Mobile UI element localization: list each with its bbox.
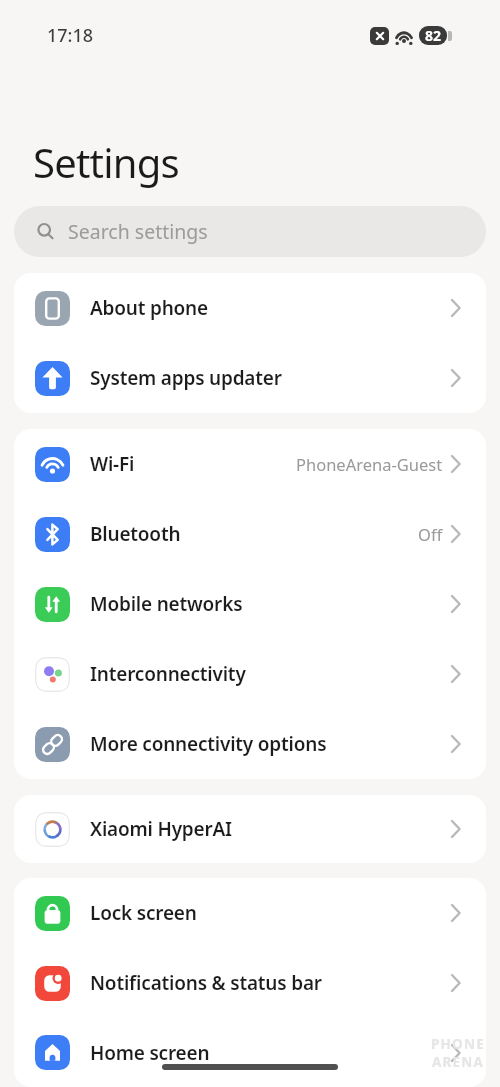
staticText: Lock screen [90, 900, 197, 926]
staticText: Search settings [68, 218, 208, 245]
staticText: Xiaomi HyperAI [90, 816, 232, 842]
staticText: Wi-Fi [90, 451, 135, 477]
button[interactable]: Interconnectivity [14, 639, 486, 709]
button[interactable]: Xiaomi HyperAI [14, 795, 486, 863]
staticText: About phone [90, 295, 208, 321]
staticText: 82 [425, 26, 442, 45]
staticText: Bluetooth [90, 521, 181, 547]
button[interactable]: About phone [14, 273, 486, 343]
staticText: Home screen [90, 1040, 210, 1066]
button[interactable]: More connectivity options [14, 709, 486, 779]
staticText: Interconnectivity [90, 661, 246, 687]
staticText: PhoneArena-Guest [296, 453, 443, 475]
button[interactable]: Search settings [14, 206, 486, 257]
button[interactable]: Mobile networks [14, 569, 486, 639]
button[interactable]: Wi-Fi [14, 429, 486, 499]
staticText: ARENA [432, 1053, 485, 1071]
staticText: Notifications & status bar [90, 970, 322, 996]
button[interactable]: Bluetooth [14, 499, 486, 569]
button[interactable]: Lock screen [14, 878, 486, 948]
staticText: Settings [33, 135, 179, 189]
button[interactable]: Notifications & status bar [14, 948, 486, 1018]
staticText: 17:18 [47, 23, 94, 48]
staticText: More connectivity options [90, 731, 327, 757]
button[interactable]: System apps updater [14, 343, 486, 413]
staticText: Off [418, 523, 443, 545]
staticText: System apps updater [90, 365, 282, 391]
button[interactable]: Home screen [14, 1018, 486, 1087]
staticText: Mobile networks [90, 591, 243, 617]
staticText: PHONE [431, 1035, 485, 1053]
